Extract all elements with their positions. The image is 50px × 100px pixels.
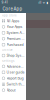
staticText: Settings: [2, 59, 14, 62]
button[interactable]: Your Apps: [0, 24, 26, 30]
staticText: ıll ᯤ ▮: [38, 0, 48, 4]
button[interactable]: System Apps: [0, 30, 26, 36]
button[interactable]: Advanced Settings: [0, 63, 26, 69]
staticText: App Store: [2, 14, 17, 17]
staticText: Shop System Archive: [6, 53, 24, 58]
staticText: User guide: [6, 70, 24, 74]
button[interactable]: About: [0, 87, 26, 93]
button[interactable]: Switch theme: [0, 81, 26, 87]
staticText: Report Bug: [6, 76, 23, 80]
staticText: Advanced Settings: [6, 64, 24, 68]
button[interactable]: Shop System Archive: [0, 53, 26, 59]
staticText: Switch theme: [6, 82, 24, 86]
staticText: All Apps: [6, 19, 19, 23]
button[interactable]: All Apps: [0, 18, 26, 24]
button[interactable]: Purchased: [0, 42, 26, 48]
staticText: Core App: [2, 6, 22, 12]
staticText: System Apps: [6, 31, 24, 35]
staticText: 9:41: [2, 1, 8, 4]
staticText: Purchased: [6, 43, 23, 47]
staticText: About: [6, 88, 15, 92]
button[interactable]: Report Bug: [0, 75, 26, 81]
staticText: Archive: [2, 48, 13, 52]
button[interactable]: User guide: [0, 69, 26, 75]
staticText: Your Apps: [6, 25, 22, 29]
button[interactable]: Premium Apps: [0, 36, 26, 42]
staticText: Premium Apps: [6, 37, 24, 41]
